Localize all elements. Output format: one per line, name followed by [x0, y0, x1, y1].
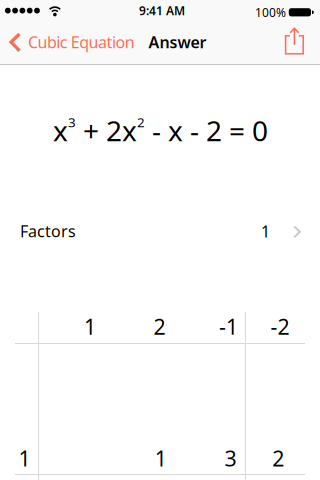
staticText: -2 [270, 312, 289, 341]
button[interactable]: Cubic Equation [0, 20, 150, 64]
staticText: 2 [153, 312, 165, 341]
staticText: x3 + 2x2 - x - 2 = 0 [53, 112, 268, 149]
staticText: Cubic Equation [28, 31, 135, 53]
staticText: 1 [18, 444, 30, 472]
staticText: 2 [272, 444, 284, 472]
staticText: Answer [148, 31, 206, 53]
staticText: Factors [20, 220, 76, 242]
staticText: 3 [224, 444, 236, 472]
button[interactable]: Share [272, 19, 316, 63]
staticText: 100% [255, 4, 286, 20]
staticText: 1 [155, 444, 167, 472]
staticText: 9:41 AM [139, 3, 185, 18]
staticText: -1 [219, 312, 238, 341]
staticText: 1 [261, 221, 270, 242]
staticText: 1 [84, 312, 96, 341]
button[interactable]: Factors [0, 209, 320, 253]
